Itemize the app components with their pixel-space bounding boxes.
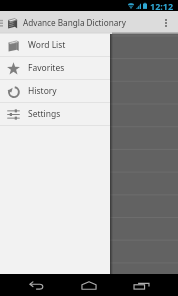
staticText: Settings (28, 108, 61, 120)
staticText: Favorites (28, 62, 65, 74)
button[interactable]: Home (59, 274, 118, 296)
button[interactable]: Recent apps (112, 274, 171, 296)
button[interactable]: Word List (0, 34, 110, 56)
staticText: Word List (28, 39, 66, 51)
staticText: History (28, 85, 57, 97)
button[interactable]: Open navigation drawer (0, 11, 18, 34)
button[interactable]: Settings (0, 103, 110, 125)
button[interactable]: More options (154, 11, 178, 34)
staticText: 12:12 (150, 0, 174, 11)
staticText: Advance Bangla Dictionary (23, 17, 126, 28)
button[interactable]: History (0, 80, 110, 102)
button[interactable]: Back (7, 274, 66, 296)
button[interactable]: Favorites (0, 57, 110, 79)
